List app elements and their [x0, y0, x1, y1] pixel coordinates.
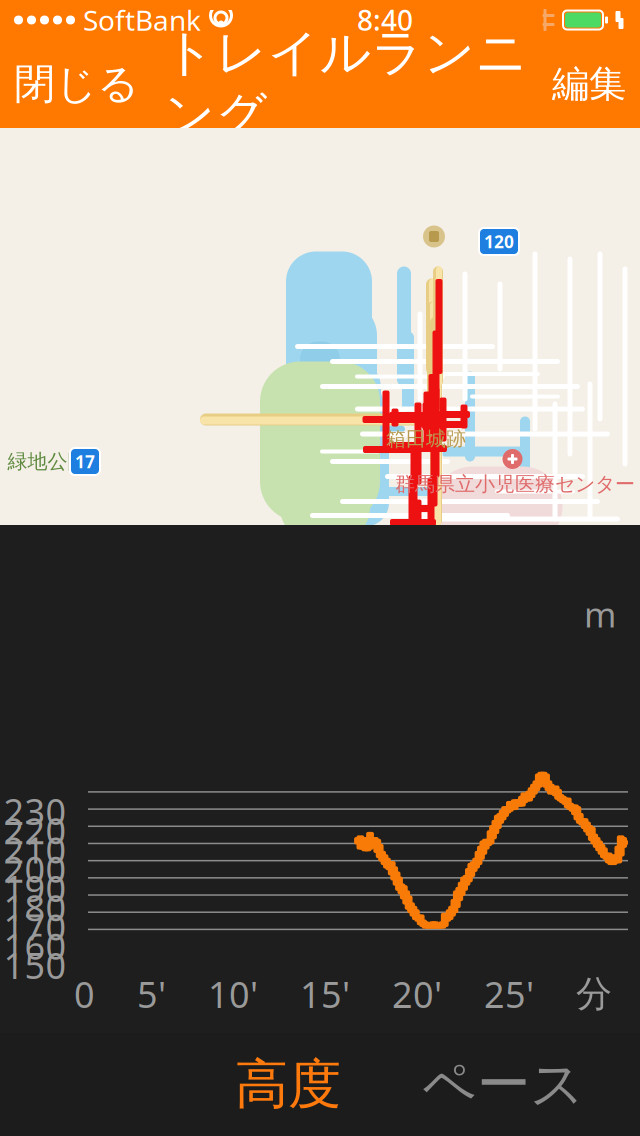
- staticText: 高度: [235, 1052, 341, 1117]
- button[interactable]: 高度: [209, 1042, 367, 1127]
- staticText: 190: [3, 864, 66, 912]
- staticText: 200: [3, 845, 66, 893]
- staticText: 編集: [552, 61, 626, 107]
- staticText: 25': [484, 970, 534, 1018]
- staticText: SoftBank: [83, 1, 201, 39]
- staticText: トレイルランニング: [163, 22, 527, 146]
- button[interactable]: 編集: [538, 53, 640, 115]
- staticText: 20': [392, 970, 442, 1018]
- staticText: 150: [3, 941, 66, 989]
- button[interactable]: 閉じる: [0, 51, 153, 117]
- staticText: 170: [3, 903, 66, 950]
- staticText: 5': [137, 970, 166, 1018]
- staticText: 17: [75, 450, 95, 473]
- staticText: 180: [3, 883, 66, 931]
- staticText: 10': [208, 970, 258, 1018]
- staticText: 群馬県立小児医療センター: [395, 472, 635, 496]
- staticText: 210: [3, 826, 66, 873]
- staticText: 緑地公園: [7, 449, 87, 474]
- staticText: 15': [300, 970, 350, 1018]
- staticText: 220: [3, 806, 66, 854]
- staticText: 230: [3, 787, 66, 835]
- staticText: 分: [576, 972, 612, 1016]
- staticText: 0: [74, 970, 95, 1018]
- staticText: 120: [484, 230, 514, 253]
- staticText: 箱田城跡: [386, 427, 466, 451]
- staticText: 閉じる: [14, 59, 139, 109]
- staticText: 160: [3, 922, 66, 970]
- staticText: m: [584, 591, 616, 637]
- staticText: 8:40: [357, 1, 413, 39]
- staticText: ペース: [422, 1052, 585, 1117]
- button[interactable]: ペース: [396, 1042, 611, 1127]
